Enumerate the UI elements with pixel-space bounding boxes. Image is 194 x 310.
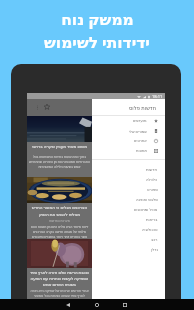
button[interactable]: ספורט (92, 184, 165, 194)
button[interactable]: אחרונים (92, 136, 165, 146)
button[interactable]: טכנולוגיה (92, 224, 165, 234)
staticText: החברתיות תמונות רבות מן האירוע שהתרחש (29, 159, 90, 163)
staticText: רכב (151, 237, 158, 242)
staticText: בתוך כמה שעות בודדות התפרסמו בכל הרשתות (29, 154, 90, 158)
button[interactable]: רכב (92, 234, 165, 244)
staticText: אשר בוחרים יותר ויותר במוצרים מיובאים (29, 234, 90, 238)
staticText: סלבס ואופנה (136, 197, 158, 202)
staticText: מערכת החדשות (29, 219, 90, 223)
staticText: ידידותי לשימוש (44, 31, 150, 52)
staticText: אמש בשעות הלילה המאוחרות (29, 164, 90, 168)
staticText: נדלן (151, 247, 158, 252)
button[interactable]: כלכלה (92, 174, 165, 184)
staticText: חדשות פלוס (129, 104, 157, 111)
button[interactable]: שמורים שלי (92, 126, 165, 136)
staticText: בריאות (146, 217, 158, 222)
button[interactable]: אוכל ומתכונים (92, 204, 165, 214)
button[interactable]: חדשות (92, 164, 165, 174)
button[interactable]: נדלן (92, 244, 165, 254)
staticText: כלכלה (146, 177, 158, 182)
staticText: תמונות (136, 149, 147, 153)
staticText: משהו מאוד מעניין שקרה ברחבי העולם היום (29, 144, 90, 150)
staticText: אחרי חודשים ארוכים של שתיקה היא חזרה (29, 288, 90, 292)
staticText: אוכל ומתכונים (134, 207, 158, 212)
button[interactable]: בריאות (92, 214, 165, 224)
staticText: כוכבת הרשת שלנו חזרה לארץ ומיד (29, 270, 90, 275)
button[interactable]: מועדפים (92, 116, 165, 126)
button[interactable]: Recents (119, 299, 130, 310)
button[interactable] (27, 177, 92, 203)
staticText: מועדפים (133, 119, 147, 123)
staticText: 18:11 (152, 94, 163, 99)
button[interactable]: תמונות (92, 146, 165, 156)
staticText: מלמד על מגמה חדשה בקרב הצרכנים בישראל (29, 229, 90, 233)
staticText: בשטיח האדום אמש (29, 282, 90, 287)
staticText: חדשות (146, 167, 158, 172)
staticText: דיווח מיוחד הגיע אלינו היום מן השטח והוא (29, 224, 90, 228)
button[interactable]: סלבס ואופנה (92, 194, 165, 204)
staticText: הספיקה לעשות כותרות עם הופעה מרהיבה (29, 276, 90, 281)
button[interactable] (27, 116, 92, 142)
staticText: ספורט (147, 187, 158, 192)
staticText: שמורים שלי (129, 129, 147, 134)
button[interactable]: Back (62, 299, 73, 310)
button[interactable] (27, 239, 92, 268)
button[interactable]: Favourite (42, 102, 52, 112)
staticText: טכנולוגיה (142, 227, 158, 232)
staticText: מצליח לכבוש את השוק (29, 212, 90, 218)
staticText: הצרכנים מגלים כי המוצר החדש שהגיע לארץ (29, 205, 90, 211)
staticText: ממשק נוח (61, 8, 134, 29)
button[interactable]: Home (91, 299, 102, 310)
staticText: אחרונים (134, 139, 147, 143)
staticText: לארץ ומיד עשתה כותרות בכל אמצעי התקשורת (29, 293, 90, 297)
